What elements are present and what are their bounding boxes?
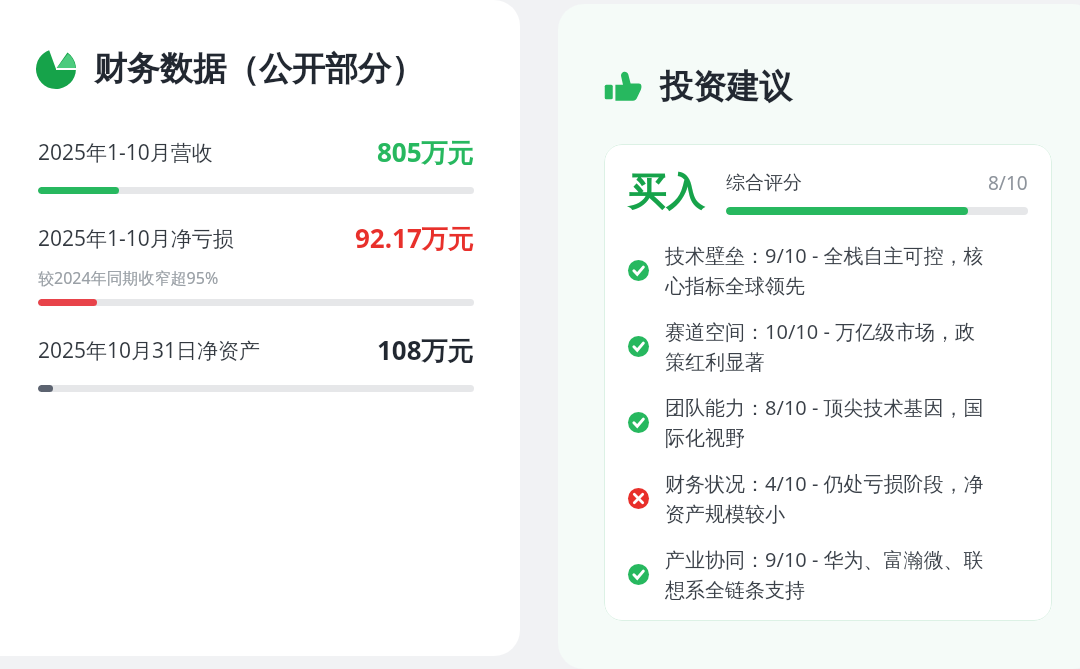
staticText: 投资建议 (660, 66, 792, 108)
staticText: 财务状况：4/10 - 仍处亏损阶段，净 (665, 470, 984, 497)
button[interactable]: 产业协同：9/10 - 华为、富瀚微、联 (628, 546, 1028, 603)
staticText: 2025年1-10月营收 (38, 138, 213, 167)
staticText: 想系全链条支持 (665, 578, 805, 603)
staticText: 产业协同：9/10 - 华为、富瀚微、联 (665, 546, 984, 573)
button[interactable]: 财务状况：4/10 - 仍处亏损阶段，净 (628, 470, 1028, 527)
staticText: 策红利显著 (665, 350, 765, 375)
staticText: 技术壁垒：9/10 - 全栈自主可控，核 (665, 242, 984, 269)
staticText: 赛道空间：10/10 - 万亿级市场，政 (665, 318, 976, 345)
button[interactable]: 赛道空间：10/10 - 万亿级市场，政 (628, 318, 1028, 375)
button[interactable]: 买入 (628, 168, 1028, 216)
staticText: 2025年1-10月净亏损 (38, 224, 234, 253)
staticText: 2025年10月31日净资产 (38, 336, 261, 365)
staticText: 资产规模较小 (665, 502, 785, 527)
other: Investment advice (604, 68, 642, 106)
button[interactable]: 团队能力：8/10 - 顶尖技术基因，国 (628, 394, 1028, 451)
staticText: 92.17万元 (355, 220, 474, 256)
staticText: 买入 (628, 168, 704, 216)
staticText: 综合评分 (726, 171, 802, 195)
staticText: 团队能力：8/10 - 顶尖技术基因，国 (665, 394, 984, 421)
button[interactable]: 2025年1-10月净亏损 (0, 220, 520, 306)
staticText: 108万元 (377, 332, 474, 368)
staticText: 财务数据（公开部分） (94, 48, 424, 90)
staticText: 8/10 (988, 170, 1028, 196)
staticText: 较2024年同期收窄超95% (38, 267, 219, 289)
staticText: 际化视野 (665, 426, 745, 451)
button[interactable]: 2025年10月31日净资产 (0, 332, 520, 392)
button[interactable]: 技术壁垒：9/10 - 全栈自主可控，核 (628, 242, 1028, 299)
staticText: 805万元 (377, 134, 474, 170)
other: Financial data (36, 49, 76, 89)
staticText: 心指标全球领先 (665, 274, 805, 299)
button[interactable]: 2025年1-10月营收 (0, 134, 520, 194)
